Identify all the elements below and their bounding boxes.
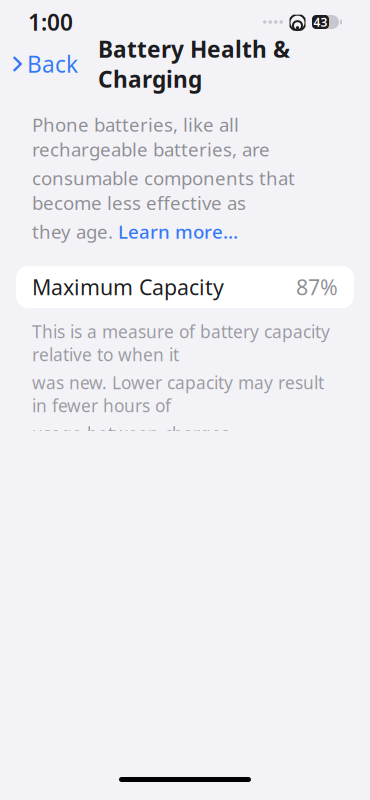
staticText: was new. Lower capacity may result in fe…	[32, 371, 324, 417]
staticText: consumable components that become less e…	[32, 166, 295, 215]
staticText: 1:00	[28, 7, 73, 37]
staticText: This is a measure of battery capacity re…	[32, 320, 330, 366]
staticText: Learn more…	[118, 219, 238, 244]
staticText: Battery Health & Charging	[98, 34, 290, 94]
button[interactable]: Maximum Capacity	[16, 266, 354, 308]
staticText: they age.	[32, 219, 118, 244]
button[interactable]: Learn more…	[118, 219, 238, 244]
button[interactable]: Back	[4, 43, 86, 85]
staticText: Maximum Capacity	[32, 273, 224, 301]
staticText: 43	[313, 14, 327, 30]
staticText: 87%	[296, 273, 338, 301]
staticText: charging routine so it can wait to finis…	[32, 776, 301, 800]
staticText: Back	[27, 49, 78, 79]
staticText: usage between charges.	[32, 422, 234, 445]
staticText: Phone batteries, like all rechargeable b…	[32, 112, 270, 162]
